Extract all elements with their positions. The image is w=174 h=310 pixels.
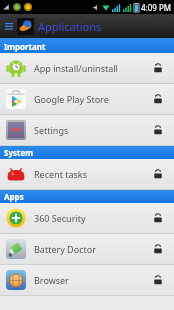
staticText: Applications — [38, 19, 102, 34]
staticText: Important — [4, 41, 46, 52]
button[interactable]: Locked — [148, 239, 168, 259]
button[interactable]: Locked — [148, 120, 168, 140]
button[interactable]: Google Play Store — [0, 84, 174, 114]
button[interactable]: Settings — [0, 115, 174, 145]
button[interactable]: Battery Doctor — [0, 234, 174, 264]
button[interactable]: Recent tasks — [0, 159, 174, 189]
button[interactable]: 360 Security — [0, 203, 174, 233]
staticText: App install/uninstall — [34, 62, 148, 74]
staticText: System — [4, 147, 34, 158]
button[interactable]: Locked — [148, 58, 168, 78]
staticText: Battery Doctor — [34, 243, 148, 255]
button[interactable]: App install/uninstall — [0, 53, 174, 83]
staticText: 4:09 PM — [141, 2, 172, 13]
staticText: Settings — [34, 124, 148, 136]
button[interactable]: Locked — [148, 270, 168, 290]
button[interactable]: Lock — [148, 14, 174, 38]
staticText: 360 Security — [34, 212, 148, 224]
staticText: Google Play Store — [34, 93, 148, 105]
button[interactable]: Locked — [148, 164, 168, 184]
button[interactable]: Navigation drawer — [2, 20, 16, 34]
button[interactable]: Browser — [0, 265, 174, 295]
button[interactable]: Locked — [148, 89, 168, 109]
staticText: Browser — [34, 274, 148, 286]
button[interactable]: Locked — [148, 208, 168, 228]
staticText: Apps — [4, 191, 24, 202]
staticText: Recent tasks — [34, 168, 148, 180]
